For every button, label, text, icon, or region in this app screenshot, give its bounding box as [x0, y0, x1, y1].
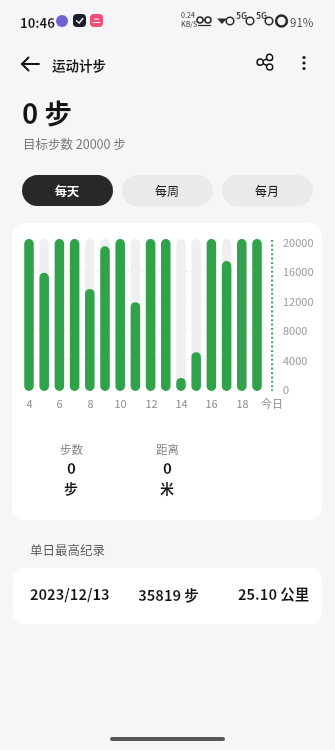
staticText: 运动计步 [52, 55, 106, 75]
staticText: 25.10 公里 [238, 583, 310, 604]
staticText: 16 [205, 395, 218, 411]
staticText: 距离 [156, 441, 179, 458]
staticText: KB/S [181, 19, 198, 29]
staticText: 20000 [283, 234, 314, 250]
staticText: 6 [56, 395, 63, 411]
staticText: 10:46 [20, 13, 55, 32]
staticText: 4000 [283, 352, 308, 368]
staticText: 5G [236, 9, 248, 21]
staticText: 0 [283, 381, 290, 397]
button[interactable] [288, 48, 320, 80]
button[interactable]: 2023/12/13 [13, 568, 322, 624]
staticText: 步数 [60, 441, 83, 458]
staticText: 5G [256, 9, 268, 21]
button[interactable]: 每天 [22, 175, 113, 206]
staticText: 8 [87, 395, 94, 411]
staticText: 米 [160, 478, 174, 498]
staticText: 今日 [261, 395, 283, 411]
staticText: 每天 [55, 182, 80, 199]
staticText: 2023/12/13 [30, 583, 110, 604]
staticText: 每周 [155, 182, 180, 199]
staticText: 35819 步 [138, 584, 199, 605]
button[interactable] [249, 46, 281, 78]
staticText: 10 [114, 395, 127, 411]
staticText: 16000 [283, 263, 314, 279]
staticText: 8000 [283, 322, 308, 338]
button[interactable]: 每月 [222, 175, 313, 206]
staticText: 0.24 [181, 10, 196, 20]
staticText: 4 [26, 395, 33, 411]
staticText: 单日最高纪录 [30, 540, 106, 558]
staticText: 每月 [255, 182, 280, 199]
staticText: 目标步数 20000 步 [23, 134, 126, 152]
staticText: 0 [67, 457, 76, 477]
button[interactable]: 每周 [122, 175, 213, 206]
staticText: 14 [175, 395, 188, 411]
staticText: 步 [64, 478, 78, 498]
staticText: 0 步 [22, 92, 72, 132]
staticText: 0 [163, 457, 172, 477]
staticText: 18 [236, 395, 249, 411]
button[interactable] [14, 48, 46, 80]
staticText: 91% [290, 14, 314, 31]
staticText: 12 [145, 395, 158, 411]
staticText: 12000 [283, 293, 314, 309]
